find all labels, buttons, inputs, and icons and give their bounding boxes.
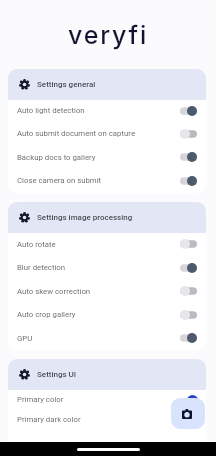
button[interactable] — [8, 430, 206, 450]
button[interactable]: Primary color — [8, 390, 206, 410]
button[interactable]: Auto crop gallery — [8, 304, 206, 327]
button[interactable]: Auto submit document on capture — [8, 123, 206, 146]
staticText: Blur detection — [17, 263, 66, 272]
button[interactable]: Settings UI — [8, 359, 206, 390]
staticText: Auto crop gallery — [17, 310, 76, 319]
staticText: Auto light detection — [17, 106, 85, 115]
staticText: Settings image processing — [37, 213, 133, 222]
staticText: GPU — [17, 334, 33, 343]
button[interactable]: Settings image processing — [8, 202, 206, 233]
button[interactable]: Open camera — [171, 398, 205, 429]
staticText: Primary color — [17, 395, 64, 404]
button[interactable]: Backup docs to gallery — [8, 146, 206, 170]
button[interactable]: Close camera on submit — [8, 170, 206, 193]
button[interactable]: Auto light detection — [8, 100, 206, 123]
staticText: Settings general — [37, 80, 96, 89]
staticText: Close camera on submit — [17, 176, 102, 185]
staticText: Backup docs to gallery — [17, 153, 96, 162]
staticText: Auto skew correction — [17, 287, 91, 296]
staticText: veryfi — [68, 20, 149, 50]
button[interactable]: GPU — [8, 327, 206, 351]
button[interactable]: Blur detection — [8, 257, 206, 280]
staticText: Primary dark color — [17, 415, 81, 424]
button[interactable]: Primary dark color — [8, 410, 206, 430]
staticText: Auto submit document on capture — [17, 129, 136, 138]
button[interactable]: Auto rotate — [8, 233, 206, 257]
button[interactable]: Auto skew correction — [8, 280, 206, 304]
staticText: Settings UI — [37, 370, 77, 379]
staticText: Auto rotate — [17, 240, 56, 249]
button[interactable]: Settings general — [8, 69, 206, 100]
